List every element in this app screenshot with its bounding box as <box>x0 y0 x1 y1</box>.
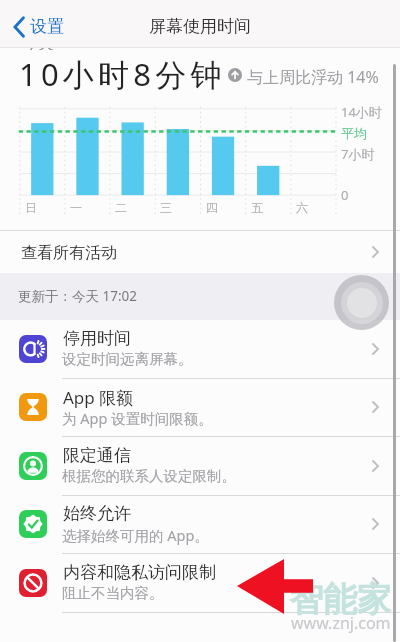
button[interactable]: 内容和隐私访问限制 <box>0 554 400 612</box>
button[interactable]: App 限额 <box>0 378 400 436</box>
staticText: App 限额 <box>63 386 134 409</box>
staticText: 设定时间远离屏幕。 <box>62 350 193 368</box>
button[interactable]: 设置 <box>13 0 64 47</box>
button[interactable]: 限定通信 <box>0 437 400 495</box>
staticText: 根据您的联系人设定限制。 <box>62 467 236 485</box>
staticText: 四 <box>206 200 218 215</box>
button[interactable]: 停用时间 <box>0 320 400 378</box>
staticText: 阻止不当内容。 <box>62 584 164 602</box>
staticText: 为 App 设置时间限额。 <box>62 408 213 428</box>
staticText: 查看所有活动 <box>21 243 117 263</box>
staticText: 始终允许 <box>63 503 131 524</box>
button[interactable]: AssistiveTouch <box>334 275 389 330</box>
staticText: 与上周比浮动 14% <box>247 66 379 88</box>
button[interactable]: 查看所有活动 <box>0 230 400 273</box>
staticText: 今天 <box>22 36 54 50</box>
staticText: 7小时 <box>341 145 375 163</box>
staticText: 六 <box>296 200 308 215</box>
staticText: 二 <box>115 200 127 215</box>
staticText: 选择始终可用的 App。 <box>62 525 209 545</box>
staticText: 14小时 <box>341 103 382 121</box>
button[interactable]: 始终允许 <box>0 495 400 553</box>
staticText: 三 <box>160 200 172 215</box>
staticText: 0 <box>341 186 349 204</box>
staticText: 停用时间 <box>63 328 131 349</box>
staticText: 日 <box>25 200 37 215</box>
staticText: www.znj.com <box>291 612 391 634</box>
staticText: 限定通信 <box>63 445 131 466</box>
staticText: 平均 <box>341 125 367 141</box>
staticText: 五 <box>251 200 263 215</box>
staticText: 设置 <box>30 16 64 37</box>
staticText: 智能家 <box>289 578 391 621</box>
staticText: 更新于：今天 17:02 <box>18 287 138 305</box>
staticText: 一 <box>70 200 82 215</box>
staticText: 内容和隐私访问限制 <box>63 562 216 583</box>
staticText: 屏幕使用时间 <box>149 16 251 37</box>
staticText: 10小时8分钟 <box>19 53 226 95</box>
